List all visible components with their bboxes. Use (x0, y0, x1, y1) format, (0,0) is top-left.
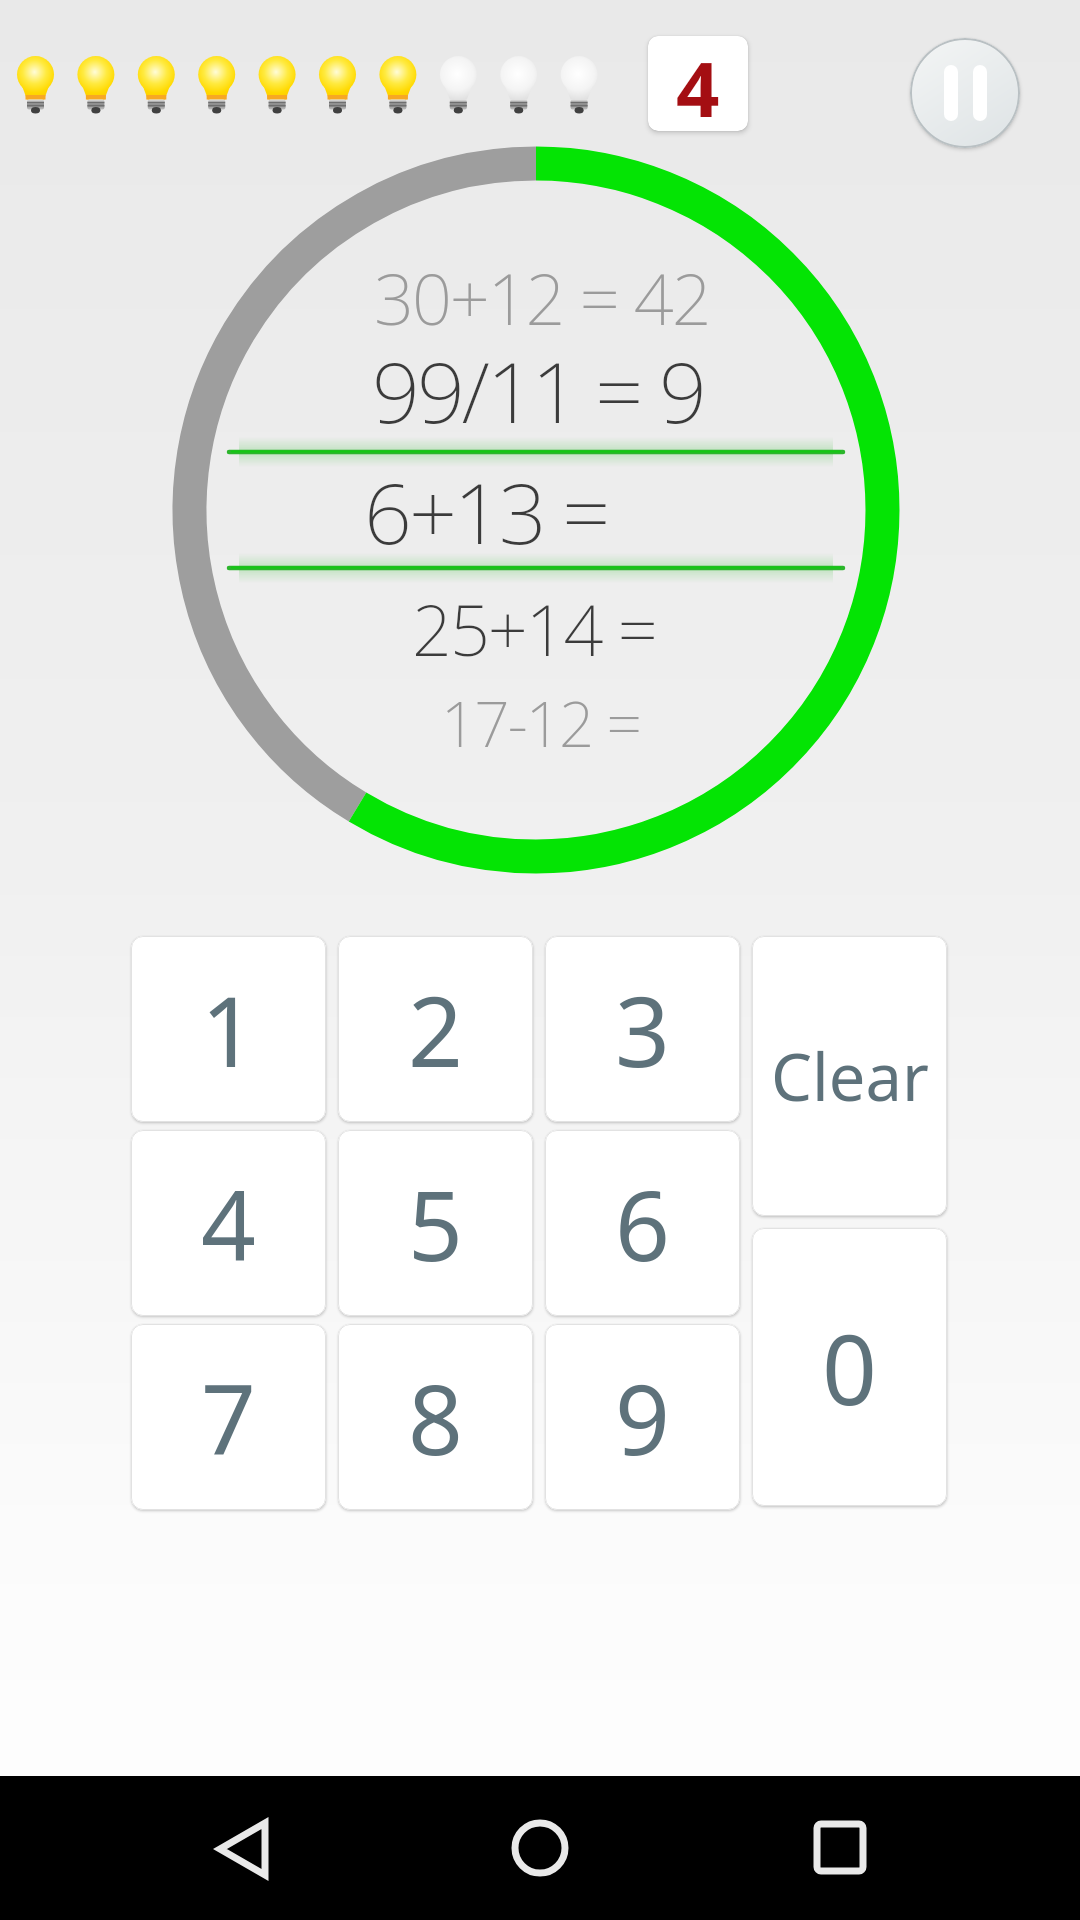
staticText: 4 (201, 1158, 256, 1289)
staticText: 17-12 = (441, 681, 654, 765)
staticText: Clear (771, 1032, 929, 1121)
staticText: 4 (676, 36, 720, 131)
staticText: 1 (201, 964, 256, 1095)
button[interactable]: 4 (131, 1130, 326, 1316)
button[interactable] (720, 1776, 1080, 1920)
button[interactable]: 1 (131, 936, 326, 1122)
staticText: 0 (822, 1302, 877, 1433)
staticText: 6 (615, 1158, 670, 1289)
button[interactable]: 7 (131, 1324, 326, 1510)
staticText: 30+12 = 42 (374, 250, 710, 345)
button[interactable]: 3 (545, 936, 740, 1122)
staticText: 3 (615, 964, 670, 1095)
staticText: 99/11 = 9 (372, 333, 704, 447)
button[interactable]: 6 (545, 1130, 740, 1316)
button[interactable]: 0 (752, 1228, 947, 1506)
staticText: 8 (408, 1352, 463, 1483)
button[interactable]: 9 (545, 1324, 740, 1510)
button[interactable]: 5 (338, 1130, 533, 1316)
staticText: 7 (201, 1352, 256, 1483)
button[interactable]: Clear (752, 936, 947, 1216)
button[interactable] (0, 1776, 360, 1920)
staticText: 9 (615, 1352, 670, 1483)
staticText: 6+13 = (364, 454, 627, 568)
button[interactable] (360, 1776, 720, 1920)
staticText: 25+14 = (412, 581, 672, 676)
button[interactable]: 2 (338, 936, 533, 1122)
button[interactable] (910, 38, 1020, 148)
staticText: 2 (408, 964, 463, 1095)
staticText: 5 (408, 1158, 463, 1289)
button[interactable]: 8 (338, 1324, 533, 1510)
